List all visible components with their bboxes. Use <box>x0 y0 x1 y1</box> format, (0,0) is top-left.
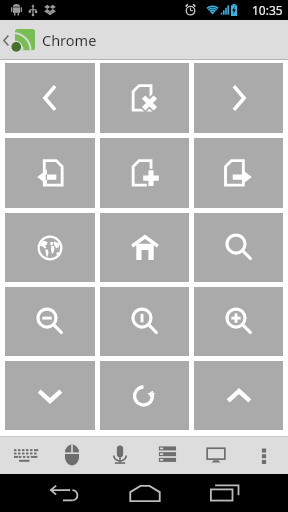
button[interactable]: Home <box>100 213 189 282</box>
staticText: 10:35 <box>252 2 283 18</box>
button[interactable]: Display <box>192 436 240 474</box>
button[interactable]: Applications <box>144 436 192 474</box>
button[interactable]: Previous tab <box>5 138 95 208</box>
button[interactable]: Forward <box>194 63 283 133</box>
button[interactable]: Keyboard <box>0 436 48 474</box>
button[interactable]: Recent apps <box>195 474 255 512</box>
button[interactable]: Chrome <box>0 20 107 60</box>
button[interactable]: Home <box>115 474 175 512</box>
button[interactable]: New tab <box>100 138 189 208</box>
button[interactable]: More options <box>240 436 288 474</box>
button[interactable]: Open URL <box>5 213 95 282</box>
button[interactable]: Scroll down <box>5 361 95 430</box>
staticText: Chrome <box>42 30 97 50</box>
button[interactable]: Stop loading <box>100 63 189 133</box>
button[interactable]: Search <box>194 213 283 282</box>
button[interactable]: Back <box>34 474 94 512</box>
button[interactable]: Voice input <box>96 436 144 474</box>
button[interactable]: Touchpad <box>48 436 96 474</box>
button[interactable]: Scroll up <box>194 361 283 430</box>
button[interactable]: Zoom out <box>5 287 95 356</box>
button[interactable]: Zoom in <box>194 287 283 356</box>
button[interactable]: Next tab <box>194 138 283 208</box>
button[interactable]: Reload <box>100 361 189 430</box>
button[interactable]: Actual size <box>100 287 189 356</box>
button[interactable]: Back <box>5 63 95 133</box>
